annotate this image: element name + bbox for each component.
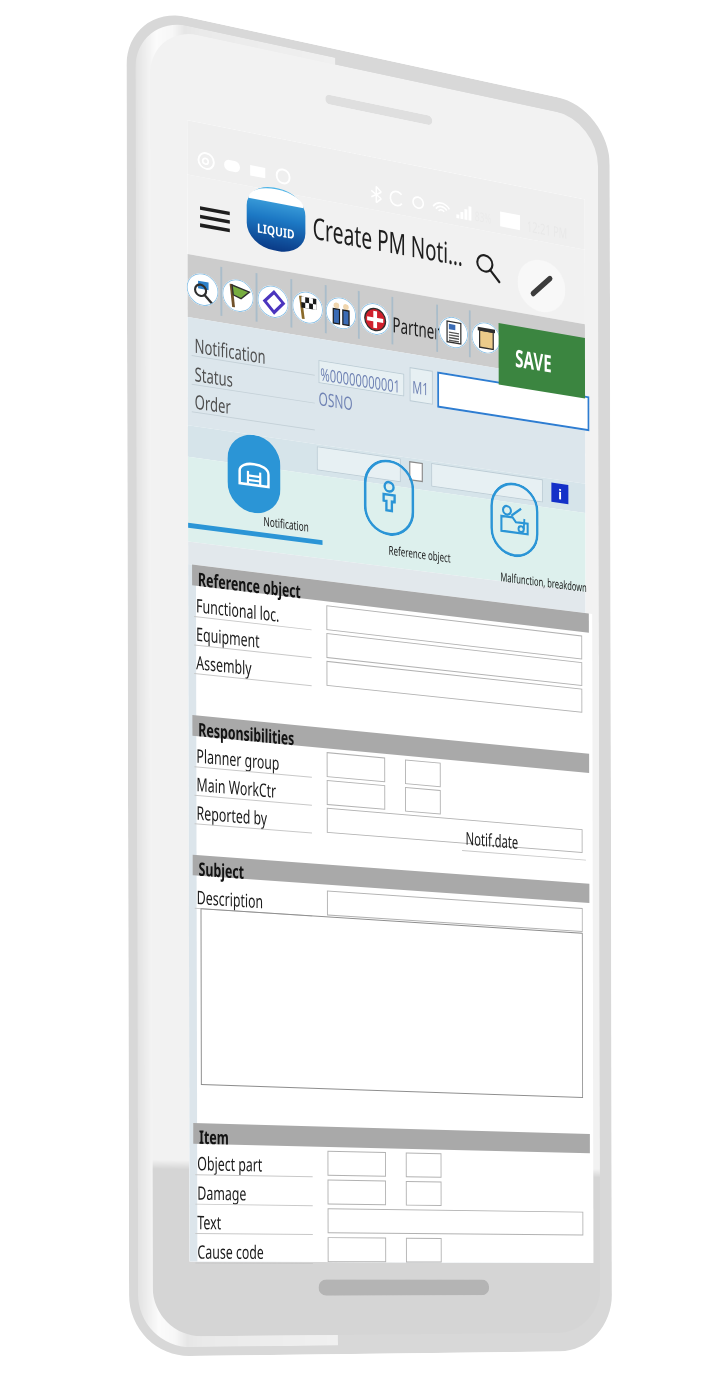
button[interactable]: Planner group (192, 740, 589, 803)
button[interactable]: Toolbar action 4 (291, 288, 323, 326)
staticText: Partner (392, 309, 440, 346)
staticText: Notif.date (465, 826, 518, 854)
staticText: Equipment (196, 621, 260, 654)
button[interactable]: Toolbar action 2 (221, 276, 254, 314)
staticText: Cause code (197, 1239, 264, 1265)
staticText: i (558, 484, 562, 503)
staticText: M1 (412, 375, 429, 401)
button[interactable]: Reported by (193, 797, 589, 856)
staticText: Notification (218, 506, 353, 541)
button[interactable]: Text (193, 1206, 590, 1238)
staticText: Item (199, 1124, 229, 1150)
staticText: Planner group (196, 743, 280, 776)
button[interactable]: Document (438, 313, 468, 350)
staticText: Status (194, 360, 233, 393)
staticText: OSNO (318, 386, 353, 416)
button[interactable]: Object part (193, 1148, 590, 1183)
button[interactable]: Toolbar action 6 (359, 300, 390, 337)
button[interactable]: Assembly (192, 646, 589, 716)
button[interactable]: Notes (471, 319, 500, 356)
button[interactable] (364, 456, 414, 539)
button[interactable]: Cause code (193, 1236, 590, 1266)
button[interactable]: Toolbar action 3 (256, 282, 289, 320)
button[interactable]: Equipment (192, 618, 589, 689)
staticText: Create PM Noti… (313, 207, 463, 274)
staticText: Reference object (355, 537, 483, 571)
staticText: Text (197, 1209, 222, 1235)
button[interactable]: Damage (193, 1177, 590, 1211)
staticText: Main WorkCtr (196, 771, 276, 804)
button[interactable]: Edit (517, 256, 565, 316)
staticText: LIQUID (257, 219, 295, 243)
button[interactable]: Functional loc. (192, 589, 589, 663)
button[interactable]: Toolbar action 1 (186, 269, 218, 308)
button[interactable]: Toolbar action 5 (325, 294, 356, 332)
staticText: Malfunction, breakdown (482, 566, 605, 598)
staticText: Reported by (196, 800, 267, 831)
staticText: Functional loc. (196, 593, 280, 628)
staticText: SAVE (515, 341, 552, 379)
button[interactable]: Main WorkCtr (192, 768, 589, 830)
staticText: Description (197, 884, 263, 914)
staticText: Notification (194, 332, 266, 370)
staticText: Order (195, 388, 231, 420)
staticText: Reference object (198, 566, 301, 604)
button[interactable]: Search (470, 245, 506, 291)
button[interactable]: Description (193, 881, 589, 935)
staticText: Responsibilities (198, 717, 294, 751)
staticText: %00000000001 (320, 362, 400, 399)
button[interactable] (227, 431, 281, 516)
staticText: Object part (197, 1151, 263, 1177)
staticText: Assembly (196, 650, 252, 681)
staticText: Subject (198, 856, 244, 885)
staticText: Damage (197, 1180, 247, 1206)
button[interactable]: Open navigation menu (191, 179, 237, 258)
button[interactable] (490, 479, 539, 560)
button[interactable]: Save (499, 323, 585, 398)
